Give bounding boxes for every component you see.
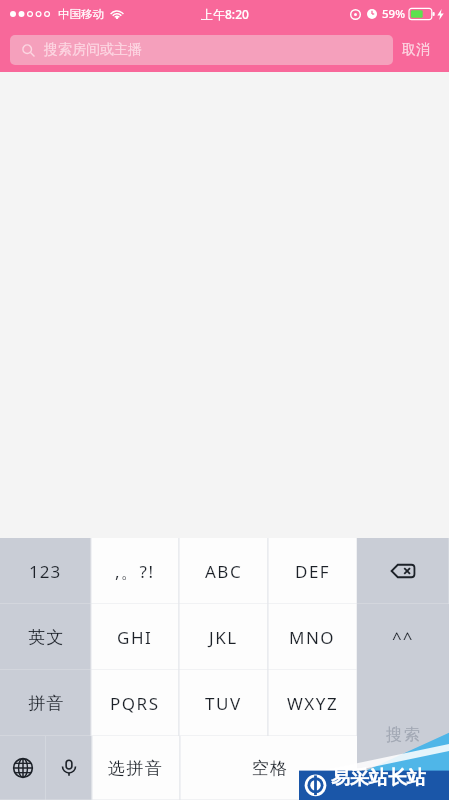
staticText: 英文	[28, 627, 64, 648]
staticText: WXYZ	[287, 692, 339, 715]
button[interactable]: ABC	[179, 538, 268, 604]
staticText: ,。?!	[115, 560, 155, 583]
staticText: 59%	[382, 6, 405, 22]
button[interactable]: 搜索	[357, 669, 449, 800]
staticText: 拼音	[28, 693, 64, 714]
button[interactable]: GHI	[91, 604, 179, 670]
staticText: GHI	[117, 626, 153, 649]
staticText: DEF	[295, 560, 331, 583]
button[interactable]: JKL	[179, 604, 268, 670]
button[interactable]: 选拼音	[92, 736, 180, 800]
button[interactable]: DEF	[268, 538, 357, 604]
staticText: 选拼音	[108, 758, 164, 779]
staticText: MNO	[289, 626, 336, 649]
button[interactable]: 搜索房间或主播	[10, 35, 393, 65]
button[interactable]: Switch keyboard	[0, 736, 46, 800]
button[interactable]: ^^	[357, 604, 449, 670]
button[interactable]: Voice input	[46, 736, 92, 800]
button[interactable]: 英文	[0, 604, 91, 670]
staticText: 取消	[402, 41, 430, 59]
staticText: ABC	[205, 560, 243, 583]
staticText: TUV	[205, 692, 242, 715]
button[interactable]: WXYZ	[268, 670, 357, 736]
staticText: JKL	[209, 626, 238, 649]
staticText: 搜索	[385, 725, 421, 745]
staticText: ^^	[392, 626, 414, 649]
staticText: 123	[29, 560, 62, 583]
button[interactable]: 取消	[393, 34, 439, 66]
staticText: 上午8:20	[201, 6, 249, 22]
button[interactable]: 空格	[180, 736, 358, 800]
staticText: 中国移动	[58, 7, 104, 21]
staticText: 搜索房间或主播	[44, 41, 142, 59]
staticText: PQRS	[110, 692, 160, 715]
staticText: 空格	[251, 758, 288, 779]
staticText: 易采站长站	[331, 766, 426, 790]
button[interactable]: 123	[0, 538, 91, 604]
button[interactable]: TUV	[179, 670, 268, 736]
button[interactable]: 拼音	[0, 670, 91, 736]
button[interactable]: MNO	[268, 604, 357, 670]
button[interactable]: Delete	[357, 538, 449, 604]
button[interactable]: ,。?!	[91, 538, 179, 604]
button[interactable]: PQRS	[91, 670, 179, 736]
